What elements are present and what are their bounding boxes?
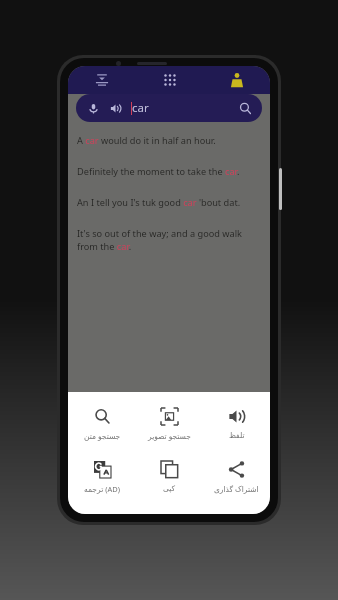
staticText: It's so out of the way; and a good walk …	[77, 227, 261, 253]
staticText: جستجو تصویر	[148, 431, 191, 441]
button[interactable]: Dictionary	[203, 66, 270, 94]
button[interactable]: An I tell you I's tuk good car 'bout dat…	[77, 194, 261, 211]
button[interactable]: Translate	[68, 459, 136, 496]
staticText: ترجمه (AD)	[84, 484, 120, 494]
button[interactable]: Voice input	[76, 94, 262, 122]
button[interactable]: Pronounce	[107, 100, 123, 116]
button[interactable]: Pronounce	[203, 406, 270, 442]
button[interactable]: Definitely the moment to take the car.	[77, 163, 261, 180]
button[interactable]: Apps grid	[136, 66, 203, 94]
staticText: Definitely the moment to take the car.	[77, 165, 240, 178]
staticText: کپی	[163, 484, 176, 493]
button[interactable]: A car would do it in half an hour.	[77, 132, 261, 149]
staticText: An I tell you I's tuk good car 'bout dat…	[77, 196, 241, 209]
staticText: car	[132, 100, 149, 116]
button[interactable]: Text search	[68, 406, 136, 443]
button[interactable]: Voice input	[85, 100, 101, 116]
button[interactable]: Copy	[136, 459, 203, 495]
staticText: تلفظ	[229, 431, 245, 440]
button[interactable]: Share	[203, 459, 270, 496]
staticText: اشتراک گذاری	[214, 484, 259, 494]
button[interactable]: Subtitles	[68, 66, 136, 94]
staticText: A car would do it in half an hour.	[77, 134, 216, 147]
button[interactable]: Image search	[136, 406, 203, 443]
button[interactable]: Search	[234, 97, 256, 119]
button[interactable]: It's so out of the way; and a good walk …	[77, 225, 261, 255]
staticText: جستجو متن	[84, 431, 121, 441]
